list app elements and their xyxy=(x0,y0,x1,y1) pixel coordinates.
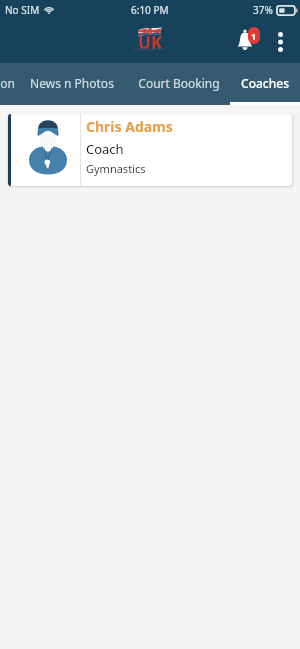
button[interactable]: News n Photos xyxy=(15,63,128,105)
button[interactable]: Coaches xyxy=(230,63,300,105)
staticText: Gymnastics xyxy=(86,161,146,176)
button[interactable]: Court Booking xyxy=(128,63,230,105)
button[interactable]: on xyxy=(0,63,15,105)
staticText: No SIM xyxy=(5,3,40,17)
button[interactable]: Notifications xyxy=(227,20,267,63)
staticText: Chris Adams xyxy=(86,117,173,136)
staticText: 6:10 PM xyxy=(131,3,169,17)
staticText: on xyxy=(0,75,15,91)
staticText: UK xyxy=(138,31,163,54)
staticText: 37% xyxy=(253,3,273,17)
staticText: 1 xyxy=(251,30,257,42)
staticText: News n Photos xyxy=(30,75,114,91)
button[interactable]: Chris Adams xyxy=(8,114,292,186)
staticText: Court Booking xyxy=(138,75,220,91)
staticText: Coach xyxy=(86,140,124,158)
staticText: GYMNASTICS xyxy=(134,47,166,52)
button[interactable]: More options xyxy=(267,20,300,63)
staticText: Coaches xyxy=(241,75,289,91)
